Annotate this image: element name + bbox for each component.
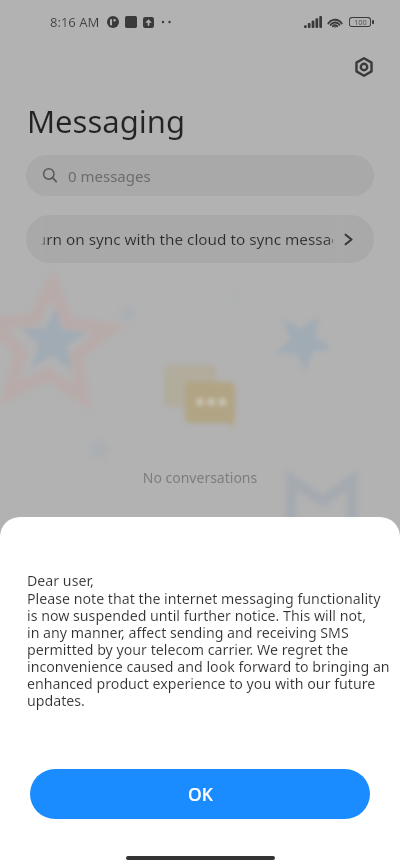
button[interactable]: Settings [343,46,384,87]
staticText: 100 [354,17,367,27]
staticText: OK [188,782,213,806]
staticText: Turn on sync with the cloud to sync mess… [40,229,333,250]
staticText: 0 messages [68,166,151,186]
button[interactable]: Turn on sync with the cloud to sync mess… [26,215,374,263]
button[interactable]: OK [30,769,370,819]
staticText: Messaging [27,100,185,142]
staticText: Dear user, Please note that the internet… [27,571,397,710]
staticText: No conversations [0,468,400,487]
button[interactable]: 0 messages [26,155,374,196]
staticText: 8:16 AM [50,13,100,31]
